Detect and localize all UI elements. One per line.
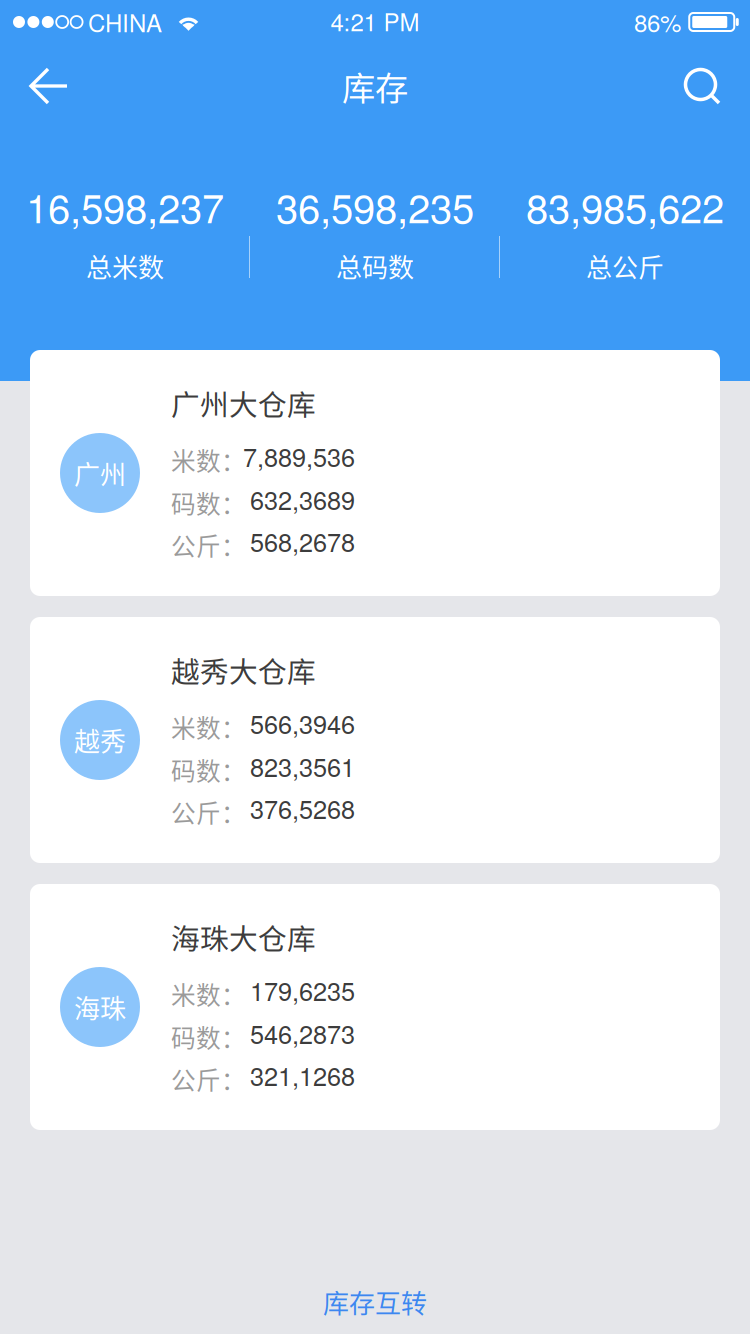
staticText: 米数： [171,976,246,1012]
button[interactable]: 越秀 [30,617,720,863]
staticText: 海珠大仓库 [171,916,316,958]
staticText: 越秀 [74,721,126,759]
staticText: 36,598,235 [276,177,474,235]
staticText: 总公斤 [586,247,664,285]
staticText: 376,5268 [250,790,355,826]
staticText: 179,6235 [250,972,355,1008]
staticText: 码数： [171,752,246,788]
staticText: 米数： [171,709,246,745]
button[interactable]: Back [5,44,93,128]
staticText: 823,3561 [250,748,355,784]
staticText: 库存 [342,62,408,110]
staticText: 公斤： [171,794,246,830]
staticText: 总米数 [86,247,164,285]
staticText: 库存互转 [323,1283,427,1321]
staticText: 米数： [171,442,246,478]
staticText: 546,2873 [250,1015,355,1051]
staticText: 83,985,622 [526,177,724,235]
staticText: 632,3689 [250,481,355,517]
staticText: 越秀大仓库 [171,649,316,691]
staticText: 566,3946 [250,705,355,741]
button[interactable]: 库存互转 [225,1272,525,1332]
staticText: 568,2678 [250,523,355,559]
staticText: 码数： [171,1019,246,1055]
staticText: 海珠 [74,988,126,1026]
staticText: 公斤： [171,1061,246,1097]
staticText: CHINA [88,5,162,39]
staticText: 4:21 PM [330,4,419,38]
staticText: 16,598,237 [26,177,224,235]
button[interactable]: 海珠 [30,884,720,1130]
staticText: 公斤： [171,527,246,563]
staticText: 321,1268 [250,1057,355,1093]
staticText: 码数： [171,485,246,521]
button[interactable]: Search [660,44,744,128]
staticText: 广州 [74,454,126,492]
staticText: 总码数 [336,247,414,285]
staticText: 广州大仓库 [171,382,316,424]
button[interactable]: 广州 [30,350,720,596]
staticText: 86% [634,5,681,39]
staticText: 7,889,536 [243,438,355,474]
